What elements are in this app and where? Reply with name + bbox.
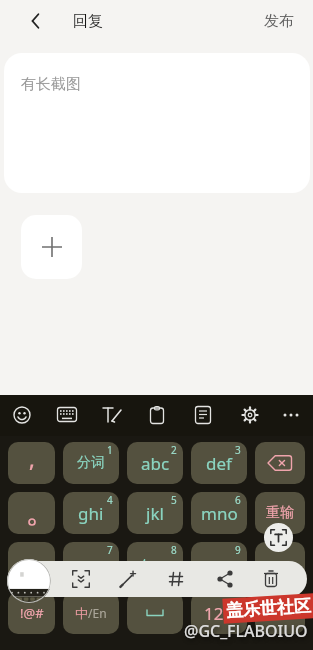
button[interactable] xyxy=(72,570,90,588)
button[interactable]: 重输 xyxy=(255,492,305,534)
button[interactable] xyxy=(150,406,164,424)
button[interactable]: ghi xyxy=(63,492,119,534)
button[interactable]: 发布 xyxy=(264,12,294,31)
button[interactable] xyxy=(255,542,305,584)
button[interactable] xyxy=(264,570,278,587)
staticText: 4 xyxy=(107,493,113,507)
button[interactable]: 中 xyxy=(63,592,119,634)
staticText: , xyxy=(29,445,35,474)
staticText: 中 xyxy=(75,605,88,621)
staticText: 重输 xyxy=(266,504,294,522)
button[interactable] xyxy=(8,492,55,534)
button[interactable]: jkl xyxy=(127,492,183,534)
button[interactable] xyxy=(255,592,305,634)
button[interactable]: def xyxy=(191,442,247,484)
button[interactable]: pqrs xyxy=(63,542,119,584)
staticText: 6 xyxy=(235,493,241,507)
staticText: 分词 xyxy=(77,454,105,472)
button[interactable]: , xyxy=(8,442,55,484)
button[interactable] xyxy=(241,406,259,424)
staticText: 123 xyxy=(204,602,234,625)
staticText: 回复 xyxy=(73,12,103,31)
button[interactable] xyxy=(127,592,183,634)
staticText: 3 xyxy=(235,443,241,457)
staticText: ghi xyxy=(78,502,104,525)
staticText: pqrs xyxy=(73,552,110,575)
button[interactable] xyxy=(283,413,299,417)
button[interactable] xyxy=(195,406,211,424)
staticText: 5 xyxy=(171,493,177,507)
button[interactable] xyxy=(264,523,293,552)
button[interactable]: mno xyxy=(191,492,247,534)
staticText: tuv xyxy=(142,552,168,575)
button[interactable]: !@# xyxy=(8,592,55,634)
staticText: 2 xyxy=(171,443,177,457)
staticText: 7 xyxy=(107,543,113,557)
button[interactable]: abc xyxy=(127,442,183,484)
staticText: !@# xyxy=(20,604,44,622)
button[interactable]: wxyz xyxy=(191,542,247,584)
staticText: mno xyxy=(201,502,238,525)
button[interactable] xyxy=(169,572,183,586)
staticText: 盖乐世社区 xyxy=(225,595,311,621)
button[interactable] xyxy=(13,406,31,424)
button[interactable]: 有长截图 xyxy=(4,53,310,193)
button[interactable] xyxy=(28,13,44,29)
staticText: abc xyxy=(141,452,170,475)
button[interactable] xyxy=(255,442,305,484)
button[interactable] xyxy=(8,542,55,584)
button[interactable]: 分词 xyxy=(63,442,119,484)
staticText: def xyxy=(206,452,232,475)
staticText: 8 xyxy=(171,543,177,557)
staticText: 1 xyxy=(107,443,113,457)
staticText: /En xyxy=(88,605,107,621)
staticText: 9 xyxy=(235,543,241,557)
button[interactable] xyxy=(103,407,123,423)
button[interactable] xyxy=(217,570,233,588)
staticText: @GC_FLABOIUO xyxy=(184,620,308,642)
button[interactable]: tuv xyxy=(127,542,183,584)
button[interactable]: 123 xyxy=(191,592,247,634)
button[interactable] xyxy=(7,559,51,603)
button[interactable] xyxy=(119,570,137,588)
staticText: jkl xyxy=(146,502,164,525)
staticText: wxyz xyxy=(199,552,239,575)
button[interactable] xyxy=(57,407,77,422)
staticText: 有长截图 xyxy=(21,75,81,94)
button[interactable] xyxy=(21,215,82,279)
